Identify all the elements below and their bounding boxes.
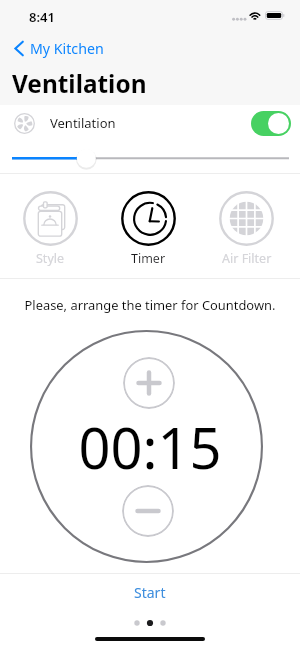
staticText: Please, arrange the timer for Countdown. bbox=[0, 296, 300, 314]
button[interactable]: Ventilation bbox=[14, 105, 287, 141]
staticText: Ventilation bbox=[50, 114, 116, 132]
button[interactable]: Style bbox=[16, 186, 84, 270]
button[interactable]: Fan speed bbox=[0, 146, 300, 170]
staticText: Timer bbox=[131, 250, 166, 267]
button[interactable]: Ventilation on bbox=[251, 111, 291, 136]
button[interactable]: My Kitchen bbox=[14, 39, 104, 58]
staticText: Air Filter bbox=[222, 250, 272, 267]
button[interactable]: Start bbox=[0, 578, 300, 606]
button[interactable]: Increase timer bbox=[123, 357, 175, 409]
staticText: 8:41 bbox=[29, 8, 55, 26]
staticText: Ventilation bbox=[12, 67, 147, 100]
button[interactable]: Air Filter bbox=[212, 186, 280, 270]
staticText: 00:15 bbox=[0, 409, 300, 485]
button[interactable]: Timer bbox=[114, 186, 182, 270]
staticText: Start bbox=[134, 583, 166, 602]
button[interactable]: Decrease timer bbox=[122, 485, 174, 537]
staticText: My Kitchen bbox=[30, 39, 104, 58]
staticText: Style bbox=[36, 250, 65, 267]
